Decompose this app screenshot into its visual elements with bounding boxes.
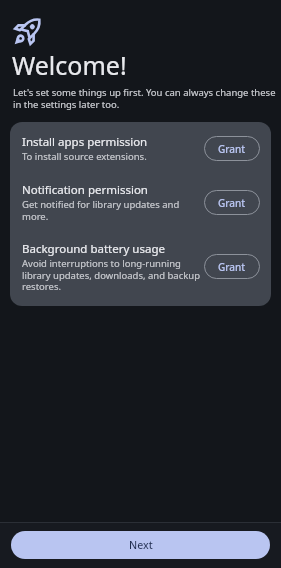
staticText: Welcome! — [12, 48, 127, 82]
button[interactable]: Grant — [204, 136, 260, 161]
staticText: Avoid interruptions to long-running libr… — [22, 257, 200, 292]
staticText: Get notified for library updates and mor… — [22, 198, 180, 222]
staticText: Grant — [218, 260, 246, 274]
staticText: Grant — [218, 196, 246, 210]
button[interactable]: Install apps permission — [22, 134, 260, 163]
staticText: To install source extensions. — [22, 150, 147, 163]
staticText: Background battery usage — [22, 241, 165, 257]
button[interactable]: Grant — [204, 190, 260, 215]
staticText: Let's set some things up first. You can … — [13, 86, 276, 111]
staticText: Install apps permission — [22, 134, 148, 150]
button[interactable]: Notification permission — [22, 182, 260, 222]
button[interactable]: Background battery usage — [22, 241, 260, 292]
staticText: Notification permission — [22, 182, 148, 198]
button[interactable]: Next — [11, 531, 270, 559]
staticText: Next — [129, 538, 153, 552]
staticText: Grant — [218, 142, 246, 156]
button[interactable]: Grant — [204, 254, 260, 279]
